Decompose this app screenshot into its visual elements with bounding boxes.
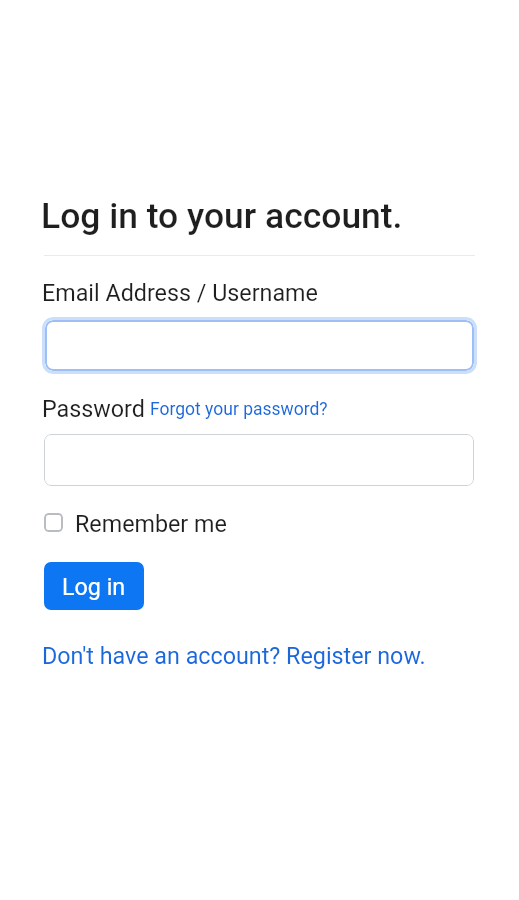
button[interactable] [44,434,474,486]
staticText: Remember me [75,510,227,537]
button[interactable]: Forgot your password? [150,399,328,420]
button[interactable] [44,513,63,532]
staticText: Log in [62,573,126,600]
button[interactable]: Log in [44,562,144,610]
staticText: Password [42,395,145,422]
staticText: Email Address / Username [42,279,318,306]
staticText: Log in to your account. [41,195,403,236]
button[interactable] [42,317,477,374]
button[interactable]: Don't have an account? Register now. [42,642,426,669]
